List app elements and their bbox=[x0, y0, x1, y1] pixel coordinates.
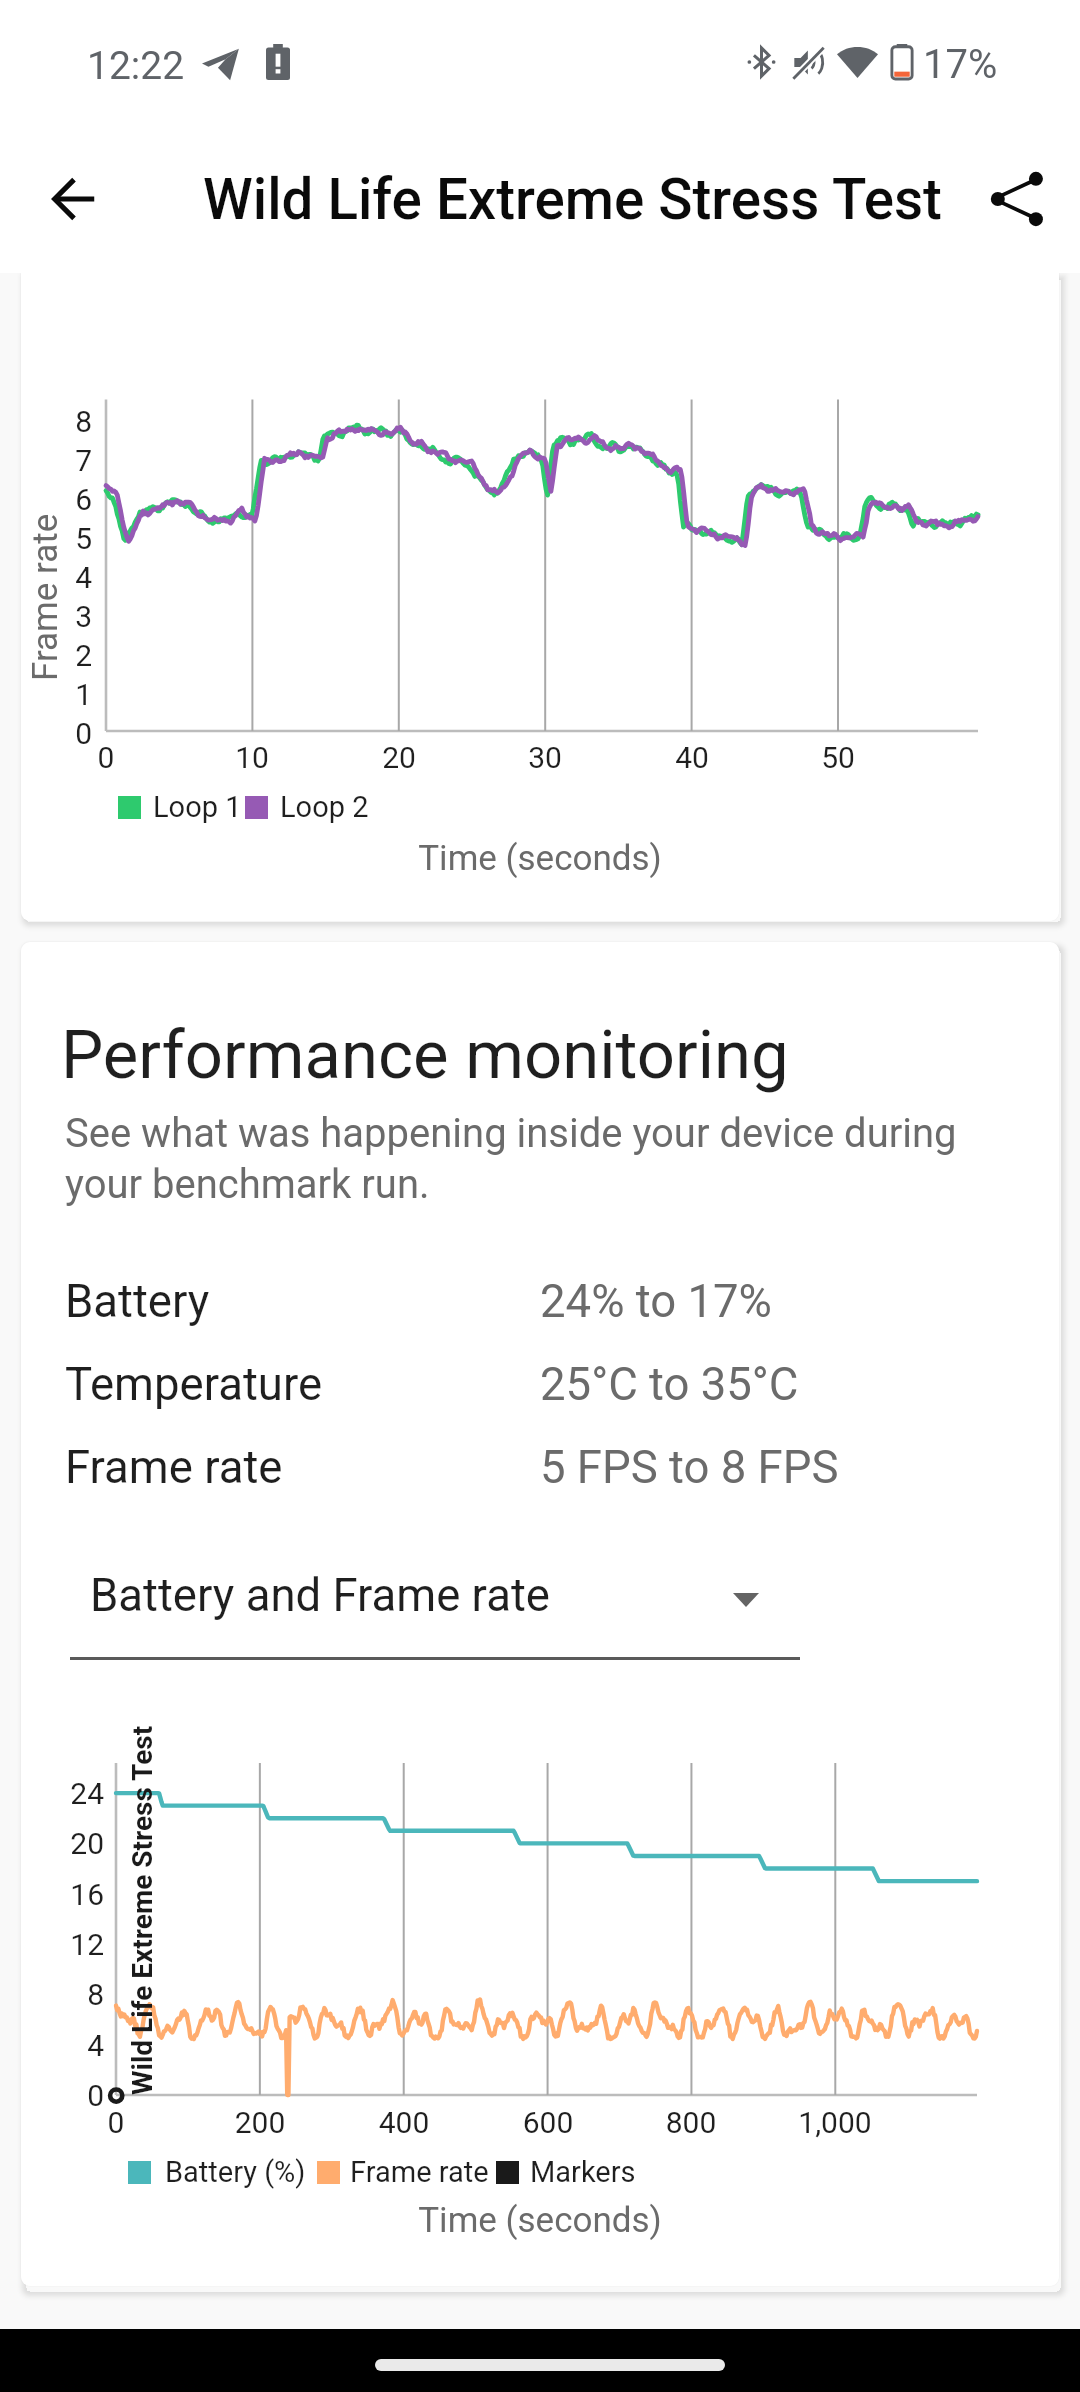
staticText: Frame rate bbox=[25, 513, 66, 681]
staticText: Wild Life Extreme Stress Test bbox=[203, 167, 942, 233]
staticText: 4 bbox=[50, 560, 92, 595]
staticText: 5 FPS to 8 FPS bbox=[540, 1441, 839, 1494]
staticText: 6 bbox=[50, 482, 92, 517]
button[interactable]: Share bbox=[958, 139, 1078, 259]
staticText: Markers bbox=[530, 2155, 636, 2189]
staticText: Performance monitoring bbox=[61, 1016, 789, 1095]
staticText: 4 bbox=[38, 2028, 104, 2063]
staticText: 40 bbox=[652, 740, 732, 775]
staticText: See what was happening inside your devic… bbox=[65, 1110, 985, 1207]
staticText: 400 bbox=[334, 2105, 474, 2140]
staticText: 17% bbox=[923, 41, 998, 88]
staticText: Wild Life Extreme Stress Test bbox=[126, 1725, 159, 2095]
staticText: 10 bbox=[212, 740, 292, 775]
staticText: 24% to 17% bbox=[540, 1275, 772, 1328]
staticText: Frame rate bbox=[65, 1441, 283, 1494]
staticText: 0 bbox=[46, 2105, 186, 2140]
staticText: 5 bbox=[50, 521, 92, 556]
button[interactable]: Back bbox=[14, 139, 134, 259]
staticText: 1 bbox=[50, 677, 92, 712]
staticText: 16 bbox=[38, 1877, 104, 1912]
staticText: 50 bbox=[798, 740, 878, 775]
staticText: 600 bbox=[478, 2105, 618, 2140]
staticText: Time (seconds) bbox=[0, 838, 1080, 879]
staticText: 8 bbox=[50, 404, 92, 439]
staticText: 12:22 bbox=[87, 43, 185, 89]
staticText: 7 bbox=[50, 443, 92, 478]
staticText: Temperature bbox=[65, 1358, 323, 1411]
staticText: 0 bbox=[66, 740, 146, 775]
staticText: Loop 1 bbox=[153, 790, 242, 824]
staticText: 200 bbox=[190, 2105, 330, 2140]
staticText: 12 bbox=[38, 1927, 104, 1962]
staticText: Frame rate bbox=[350, 2155, 489, 2189]
staticText: Battery and Frame rate bbox=[90, 1569, 550, 1622]
staticText: 3 bbox=[50, 599, 92, 634]
staticText: 8 bbox=[38, 1977, 104, 2012]
staticText: 2 bbox=[50, 638, 92, 673]
staticText: 30 bbox=[505, 740, 585, 775]
staticText: 0 bbox=[38, 2078, 104, 2113]
staticText: 800 bbox=[621, 2105, 761, 2140]
staticText: 1,000 bbox=[765, 2105, 905, 2140]
staticText: Battery (%) bbox=[165, 2155, 306, 2189]
staticText: 20 bbox=[38, 1826, 104, 1861]
button[interactable]: Battery and Frame rate bbox=[70, 1560, 800, 1660]
staticText: Battery bbox=[65, 1275, 210, 1328]
staticText: 0 bbox=[50, 716, 92, 751]
staticText: Time (seconds) bbox=[0, 2200, 1080, 2241]
staticText: 24 bbox=[38, 1776, 104, 1811]
staticText: Loop 2 bbox=[280, 790, 369, 824]
staticText: 25°C to 35°C bbox=[540, 1358, 799, 1411]
staticText: 20 bbox=[359, 740, 439, 775]
